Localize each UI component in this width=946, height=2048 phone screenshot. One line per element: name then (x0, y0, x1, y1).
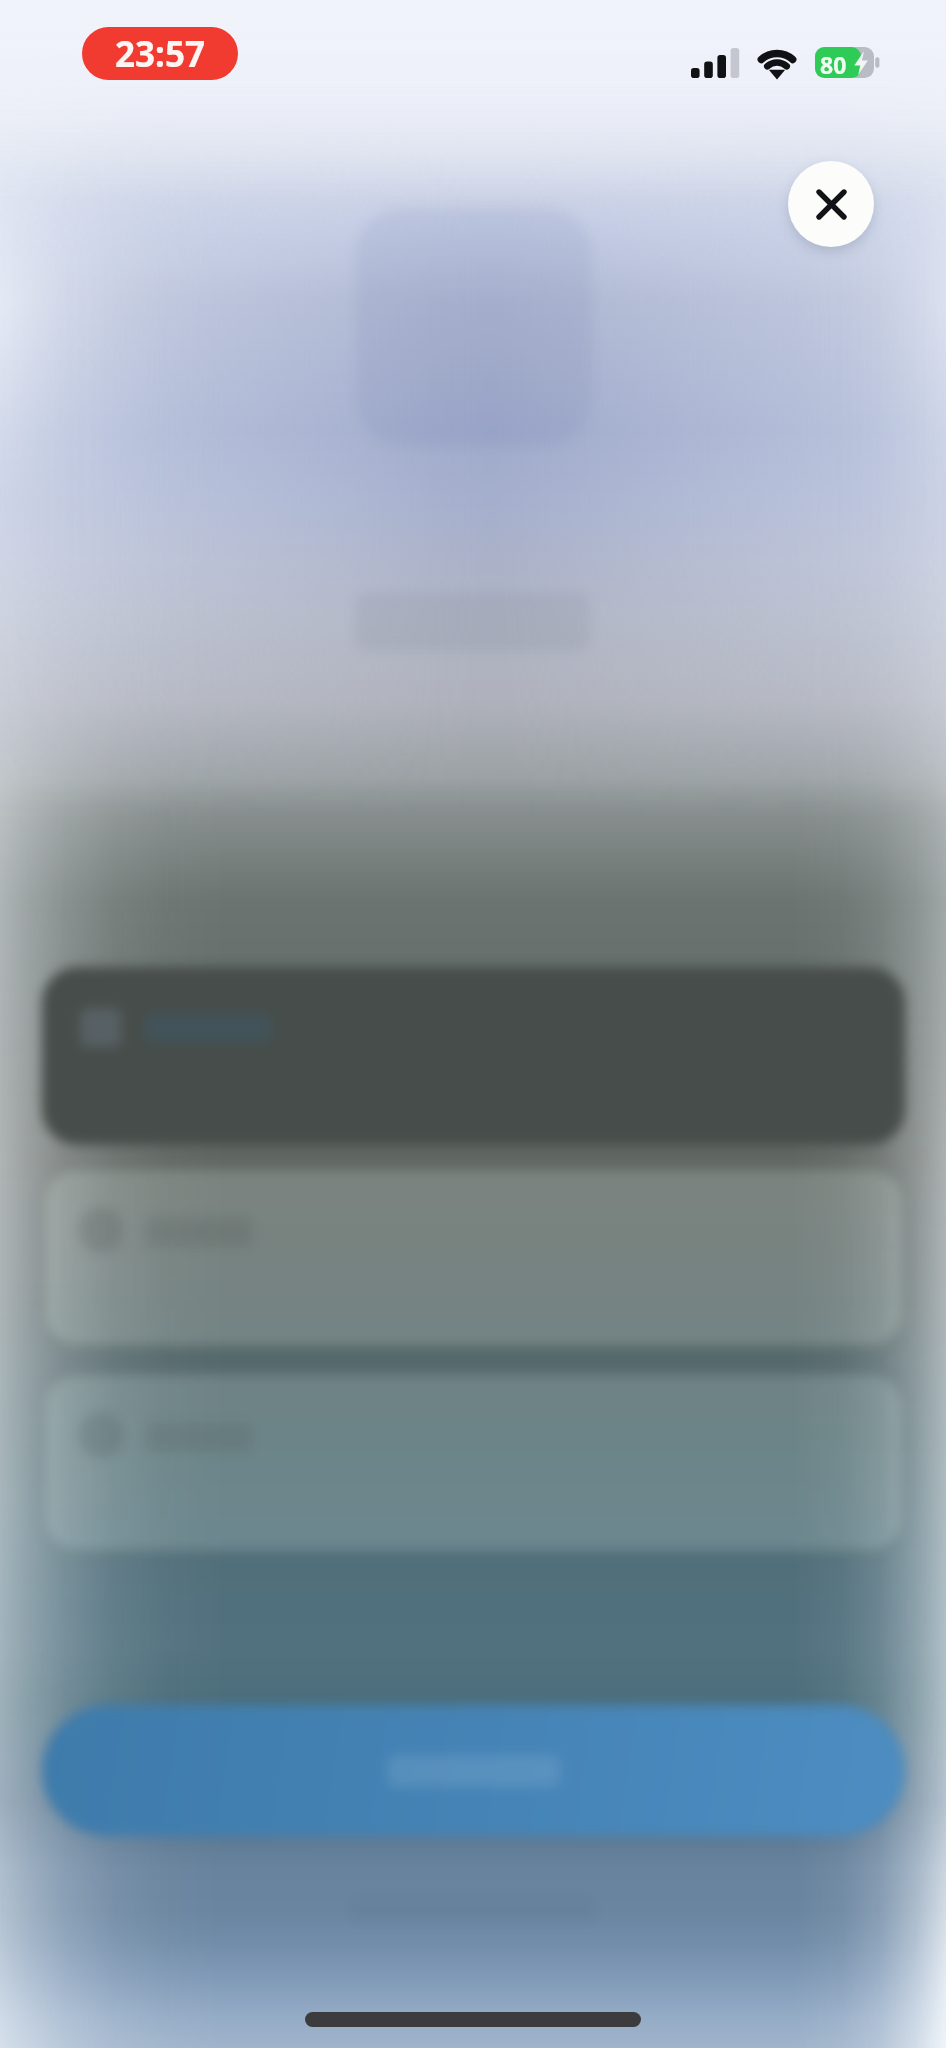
staticText: 23:57 (115, 30, 205, 78)
button[interactable]: Close (788, 161, 874, 247)
button[interactable] (42, 1372, 905, 1553)
button[interactable] (42, 967, 905, 1145)
button[interactable] (42, 1167, 905, 1348)
button[interactable] (42, 1705, 905, 1836)
staticText: 80 (820, 49, 847, 80)
